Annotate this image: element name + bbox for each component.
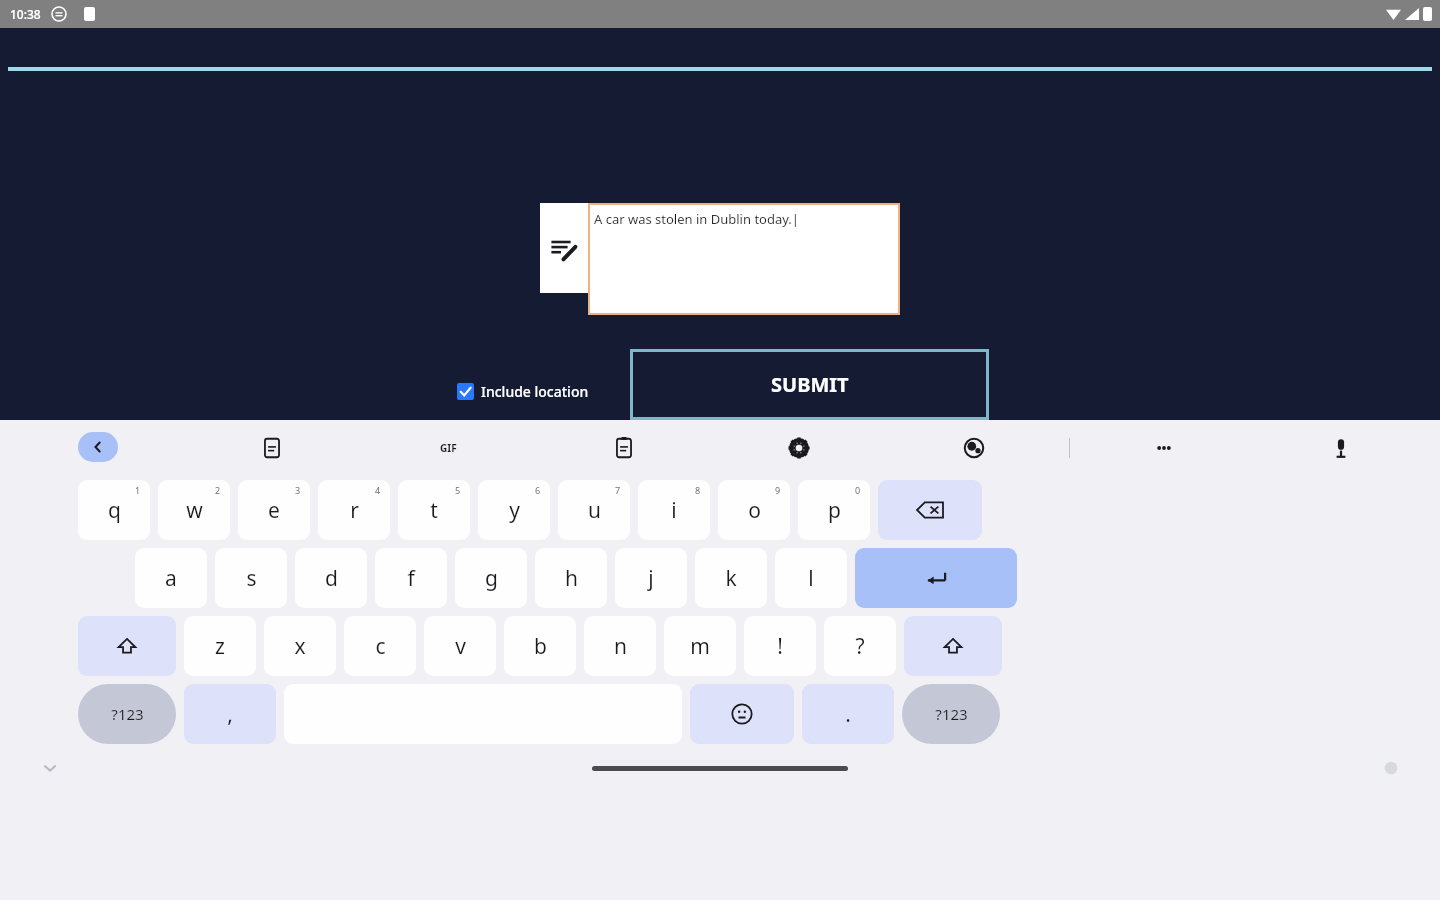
staticText: , (227, 700, 233, 729)
button[interactable]: h (535, 548, 607, 608)
button[interactable]: ? (824, 616, 896, 676)
staticText: o (748, 496, 761, 525)
staticText: ! (777, 632, 783, 661)
staticText: d (325, 564, 338, 593)
staticText: e (268, 496, 280, 525)
staticText: j (648, 564, 654, 593)
staticText: ?123 (935, 704, 968, 724)
button[interactable]: k (695, 548, 767, 608)
staticText: y (509, 496, 520, 525)
staticText: t (430, 496, 438, 525)
button[interactable]: ! (744, 616, 816, 676)
other: Hide keyboard (42, 760, 58, 776)
staticText: u (588, 496, 601, 525)
staticText: ? (855, 632, 865, 661)
staticText: c (375, 632, 386, 661)
button[interactable]: m (664, 616, 736, 676)
staticText: 6 (535, 484, 541, 496)
staticText: v (455, 632, 466, 661)
staticText: m (690, 632, 710, 661)
button[interactable]: t (398, 480, 470, 540)
button[interactable]: l (775, 548, 847, 608)
staticText: z (215, 632, 225, 661)
button[interactable]: v (424, 616, 496, 676)
button[interactable]: SUBMIT (630, 349, 989, 420)
button[interactable]: i (638, 480, 710, 540)
button[interactable]: q (78, 480, 150, 540)
staticText: 5 (455, 484, 461, 496)
button[interactable]: gif (434, 434, 462, 462)
button[interactable]: sticker (258, 434, 286, 462)
button[interactable]: n (584, 616, 656, 676)
staticText: 7 (615, 484, 621, 496)
staticText: i (671, 496, 677, 525)
button[interactable]: y (478, 480, 550, 540)
button[interactable]: more (1150, 434, 1178, 462)
button[interactable]: ?123 (78, 684, 176, 744)
button[interactable]: , (184, 684, 276, 744)
staticText: x (294, 632, 306, 661)
button[interactable]: g (455, 548, 527, 608)
staticText: 4 (375, 484, 381, 496)
button[interactable]: a (135, 548, 207, 608)
button[interactable]: Include location (455, 380, 591, 403)
button[interactable]: x (264, 616, 336, 676)
staticText: A car was stolen in Dublin today.| (594, 210, 799, 228)
staticText: n (614, 632, 627, 661)
staticText: b (534, 632, 547, 661)
staticText: 8 (695, 484, 701, 496)
staticText: f (407, 564, 415, 593)
staticText: r (350, 496, 359, 525)
button[interactable]: theme (960, 434, 988, 462)
staticText: k (725, 564, 737, 593)
staticText: q (108, 496, 121, 525)
staticText: s (246, 564, 257, 593)
button[interactable]: d (295, 548, 367, 608)
button[interactable]: clip (610, 434, 638, 462)
button[interactable]: emoji (690, 684, 794, 744)
button[interactable]: ?123 (902, 684, 1000, 744)
button[interactable]: b (504, 616, 576, 676)
button[interactable]: r (318, 480, 390, 540)
staticText: a (165, 564, 177, 593)
staticText: h (565, 564, 578, 593)
button[interactable]: j (615, 548, 687, 608)
button[interactable]: w (158, 480, 230, 540)
button[interactable]: s (215, 548, 287, 608)
button[interactable]: shift (904, 616, 1002, 676)
button[interactable]: z (184, 616, 256, 676)
button[interactable]: o (718, 480, 790, 540)
button[interactable]: shift (78, 616, 176, 676)
staticText: g (485, 564, 498, 593)
button[interactable]: bksp (878, 480, 982, 540)
button[interactable]: Back (78, 432, 118, 462)
staticText: SUBMIT (771, 371, 849, 398)
button[interactable]: e (238, 480, 310, 540)
button[interactable]: . (802, 684, 894, 744)
button[interactable]: f (375, 548, 447, 608)
staticText: 2 (215, 484, 221, 496)
staticText: 10:38 (10, 6, 41, 22)
staticText: 3 (295, 484, 301, 496)
staticText: w (186, 496, 203, 525)
button[interactable]: p (798, 480, 870, 540)
staticText: 1 (135, 484, 141, 496)
staticText: GIF (440, 441, 457, 455)
button[interactable]: c (344, 616, 416, 676)
staticText: l (808, 564, 814, 593)
button[interactable]: enter (855, 548, 1017, 608)
staticText: Include location (481, 382, 589, 401)
button[interactable]: u (558, 480, 630, 540)
staticText: . (845, 700, 851, 729)
staticText: 9 (775, 484, 781, 496)
staticText: p (828, 496, 841, 525)
button[interactable]: mic (1327, 434, 1355, 462)
staticText: 0 (855, 484, 861, 496)
staticText: ?123 (111, 704, 144, 724)
button[interactable]: settings (785, 434, 813, 462)
